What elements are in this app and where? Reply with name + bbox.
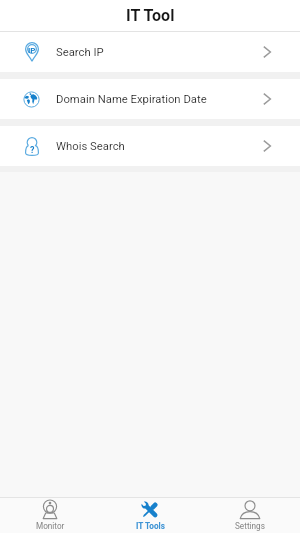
- staticText: IP: [28, 46, 36, 55]
- staticText: Domain Name Expiration Date: [56, 93, 207, 106]
- button[interactable]: IT Tools: [100, 498, 200, 533]
- button[interactable]: ?: [0, 126, 300, 166]
- staticText: ?: [30, 145, 35, 156]
- staticText: IT Tool: [126, 6, 175, 25]
- staticText: Monitor: [36, 521, 65, 531]
- button[interactable]: Monitor: [0, 498, 100, 533]
- staticText: Search IP: [56, 46, 104, 59]
- staticText: Whois Search: [56, 140, 125, 153]
- button[interactable]: Domain Name Expiration Date: [0, 79, 300, 119]
- staticText: IT Tools: [136, 521, 165, 531]
- button[interactable]: IP: [0, 32, 300, 72]
- button[interactable]: Settings: [200, 498, 300, 533]
- staticText: Settings: [235, 521, 265, 531]
